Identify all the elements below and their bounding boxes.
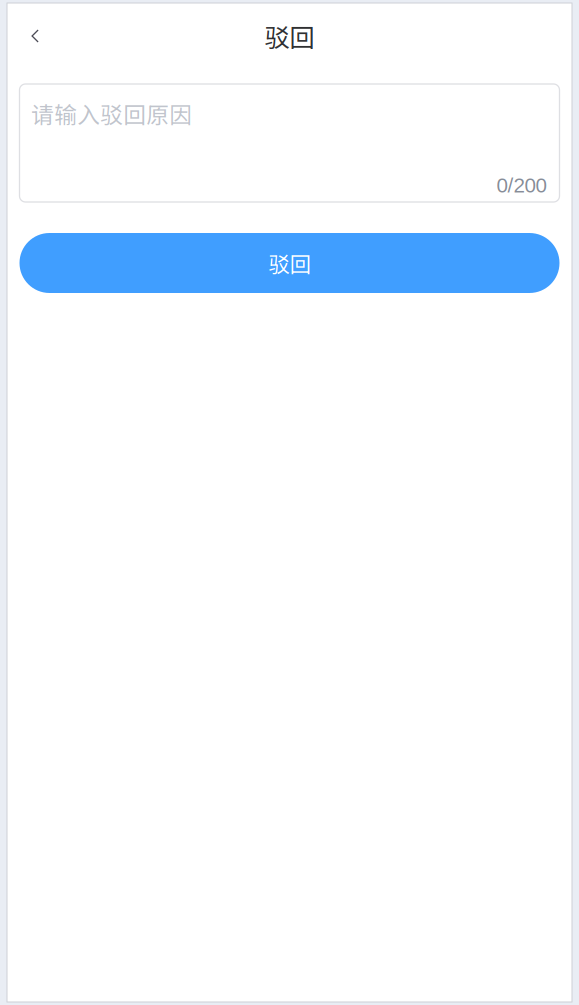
button[interactable]: Back (7, 16, 53, 60)
staticText: 请输入驳回原因 (31, 97, 192, 130)
staticText: 驳回 (264, 18, 314, 54)
button[interactable]: 驳回 (19, 233, 559, 293)
staticText: 0/200 (496, 174, 546, 197)
staticText: 驳回 (268, 248, 310, 278)
